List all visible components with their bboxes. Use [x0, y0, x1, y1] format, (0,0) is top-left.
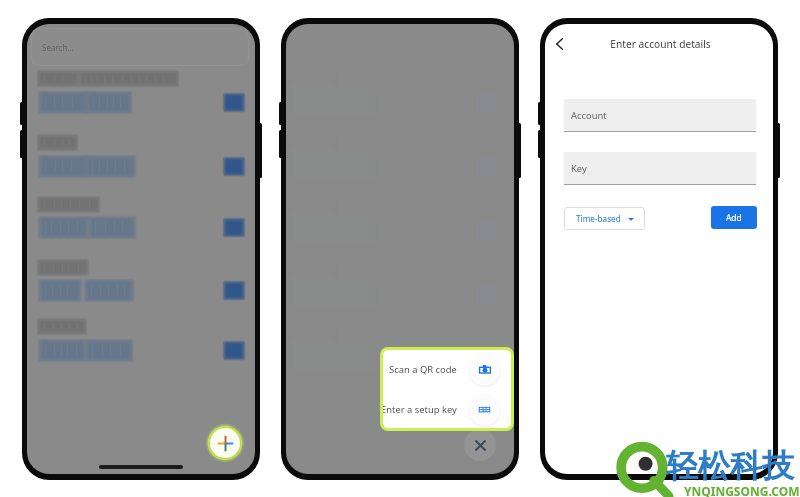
- button[interactable]: Key: [564, 152, 756, 184]
- staticText: 轻松科技: [666, 446, 794, 486]
- button[interactable]: Time-based: [564, 207, 645, 230]
- button[interactable]: [27, 312, 255, 368]
- button[interactable]: Back: [547, 31, 573, 57]
- button[interactable]: Add account: [205, 423, 245, 463]
- staticText: Add: [726, 212, 742, 223]
- button[interactable]: Search...: [31, 28, 249, 66]
- button[interactable]: [27, 190, 255, 246]
- staticText: Time-based: [576, 213, 621, 224]
- button[interactable]: Add: [711, 206, 757, 229]
- button[interactable]: [27, 128, 255, 184]
- staticText: Account: [571, 109, 607, 122]
- button[interactable]: [27, 64, 255, 120]
- button[interactable]: Scan a QR code: [383, 350, 511, 389]
- staticText: Enter account details: [610, 37, 711, 51]
- button[interactable]: [27, 253, 255, 309]
- staticText: Search...: [42, 42, 74, 53]
- staticText: Enter a setup key: [383, 403, 457, 416]
- staticText: YNQINGSONG.COM: [684, 483, 800, 497]
- button[interactable]: Enter a setup key: [383, 390, 511, 428]
- button[interactable]: Account: [564, 99, 756, 131]
- staticText: Key: [571, 162, 587, 175]
- button[interactable]: Close: [464, 429, 496, 461]
- staticText: Scan a QR code: [389, 363, 457, 376]
